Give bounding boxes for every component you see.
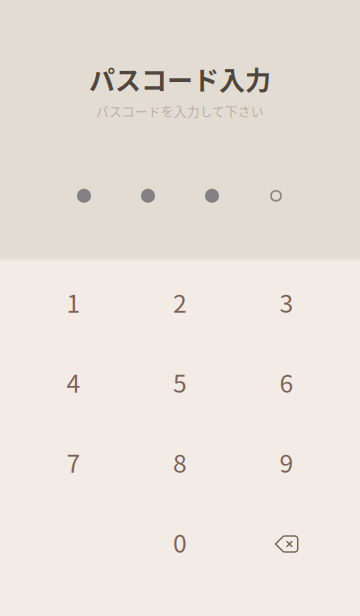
button[interactable]: 5 bbox=[140, 352, 220, 412]
button[interactable]: 1 bbox=[33, 272, 113, 332]
button[interactable]: 2 bbox=[140, 272, 220, 332]
button[interactable]: 9 bbox=[247, 432, 327, 492]
staticText: 8 bbox=[173, 444, 187, 480]
staticText: 1 bbox=[66, 284, 80, 320]
staticText: 6 bbox=[280, 364, 294, 400]
button[interactable]: 7 bbox=[33, 432, 113, 492]
staticText: パスコードを入力して下さい bbox=[96, 102, 264, 120]
button[interactable]: 6 bbox=[247, 352, 327, 412]
staticText: 2 bbox=[173, 284, 187, 320]
button[interactable]: 8 bbox=[140, 432, 220, 492]
staticText: 9 bbox=[280, 444, 294, 480]
staticText: 3 bbox=[280, 284, 294, 320]
staticText: 5 bbox=[173, 364, 187, 400]
staticText: 0 bbox=[173, 524, 187, 560]
staticText: 7 bbox=[66, 444, 80, 480]
staticText: 4 bbox=[66, 364, 80, 400]
button[interactable]: Delete bbox=[247, 512, 327, 572]
staticText: パスコード入力 bbox=[89, 60, 271, 98]
button[interactable]: 3 bbox=[247, 272, 327, 332]
button[interactable]: 0 bbox=[140, 512, 220, 572]
button[interactable]: 4 bbox=[33, 352, 113, 412]
